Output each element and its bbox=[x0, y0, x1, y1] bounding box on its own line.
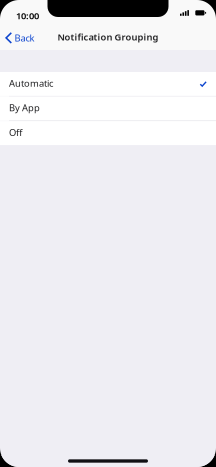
staticText: Automatic bbox=[9, 77, 53, 89]
staticText: By App bbox=[9, 101, 40, 114]
button[interactable]: Off bbox=[0, 121, 216, 145]
staticText: Off bbox=[9, 126, 22, 138]
staticText: 10:00 bbox=[16, 9, 39, 22]
button[interactable]: Automatic bbox=[0, 72, 216, 96]
staticText: Back bbox=[15, 32, 35, 44]
button[interactable]: Back bbox=[0, 24, 43, 50]
button[interactable]: By App bbox=[0, 96, 216, 120]
staticText: Notification Grouping bbox=[57, 31, 158, 43]
